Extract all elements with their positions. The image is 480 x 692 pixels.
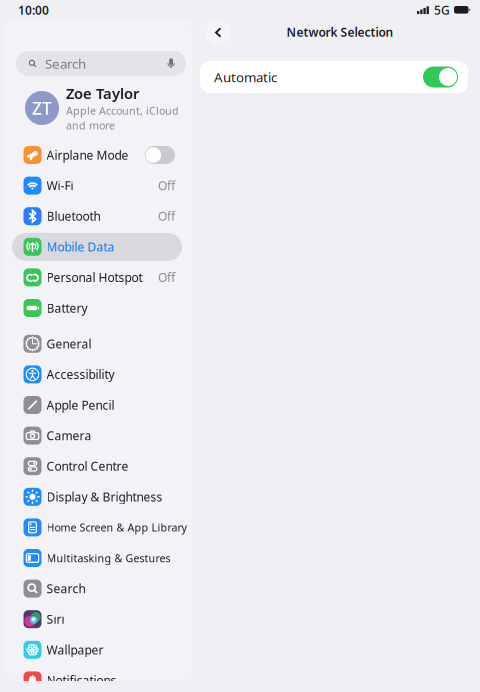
staticText: Zoe Taylor	[66, 84, 139, 103]
staticText: ZT	[32, 96, 52, 119]
button[interactable]: ZT	[6, 86, 192, 130]
button[interactable]: Wi-Fi	[12, 172, 182, 200]
staticText: Control Centre	[46, 458, 128, 474]
staticText: Mobile Data	[46, 239, 114, 255]
staticText: Personal Hotspot	[46, 269, 142, 285]
staticText: 10:00	[18, 2, 49, 18]
staticText: Battery	[46, 300, 87, 316]
button[interactable]: Control Centre	[12, 452, 182, 480]
staticText: Home Screen & App Library	[46, 520, 186, 534]
staticText: Apple Pencil	[46, 397, 114, 413]
staticText: Wallpaper	[46, 642, 103, 658]
button[interactable]: Bluetooth	[12, 202, 182, 230]
button[interactable]: Display & Brightness	[12, 483, 182, 511]
staticText: Airplane Mode	[46, 147, 128, 163]
button[interactable]: Home Screen & App Library	[12, 513, 182, 541]
staticText: Off	[158, 269, 175, 285]
button[interactable]: Notifications	[12, 666, 182, 692]
staticText: and more	[66, 118, 115, 132]
button[interactable]: Automatic	[423, 66, 458, 87]
staticText: Search	[46, 581, 85, 596]
button[interactable]: Airplane Mode	[12, 141, 182, 169]
staticText: Display & Brightness	[46, 489, 162, 505]
staticText: Bluetooth	[46, 208, 100, 224]
staticText: Off	[158, 178, 175, 193]
staticText: Network Selection	[286, 24, 393, 40]
staticText: Apple Account, iCloud	[66, 104, 179, 118]
button[interactable]: Search	[12, 575, 182, 603]
button[interactable]: Mobile Data	[12, 233, 182, 261]
button[interactable]: Back	[206, 20, 231, 45]
staticText: Accessibility	[46, 366, 114, 382]
staticText: Search	[45, 55, 86, 72]
button[interactable]: Siri	[12, 605, 182, 633]
staticText: Off	[158, 208, 175, 224]
staticText: Siri	[46, 611, 64, 627]
staticText: General	[46, 336, 91, 352]
button[interactable]: Apple Pencil	[12, 391, 182, 419]
staticText: Automatic	[214, 68, 277, 86]
button[interactable]: Personal Hotspot	[12, 263, 182, 291]
button[interactable]: Battery	[12, 294, 182, 322]
button[interactable]: Multitasking & Gestures	[12, 544, 182, 572]
button[interactable]: Camera	[12, 422, 182, 450]
staticText: Camera	[46, 428, 91, 443]
button[interactable]: Search	[16, 51, 186, 76]
staticText: Notifications	[46, 672, 116, 688]
staticText: Multitasking & Gestures	[46, 551, 170, 565]
staticText: 5G	[434, 2, 450, 18]
staticText: Wi-Fi	[46, 178, 73, 193]
button[interactable]: Wallpaper	[12, 636, 182, 664]
button[interactable]: General	[12, 330, 182, 358]
button[interactable]: Accessibility	[12, 360, 182, 388]
